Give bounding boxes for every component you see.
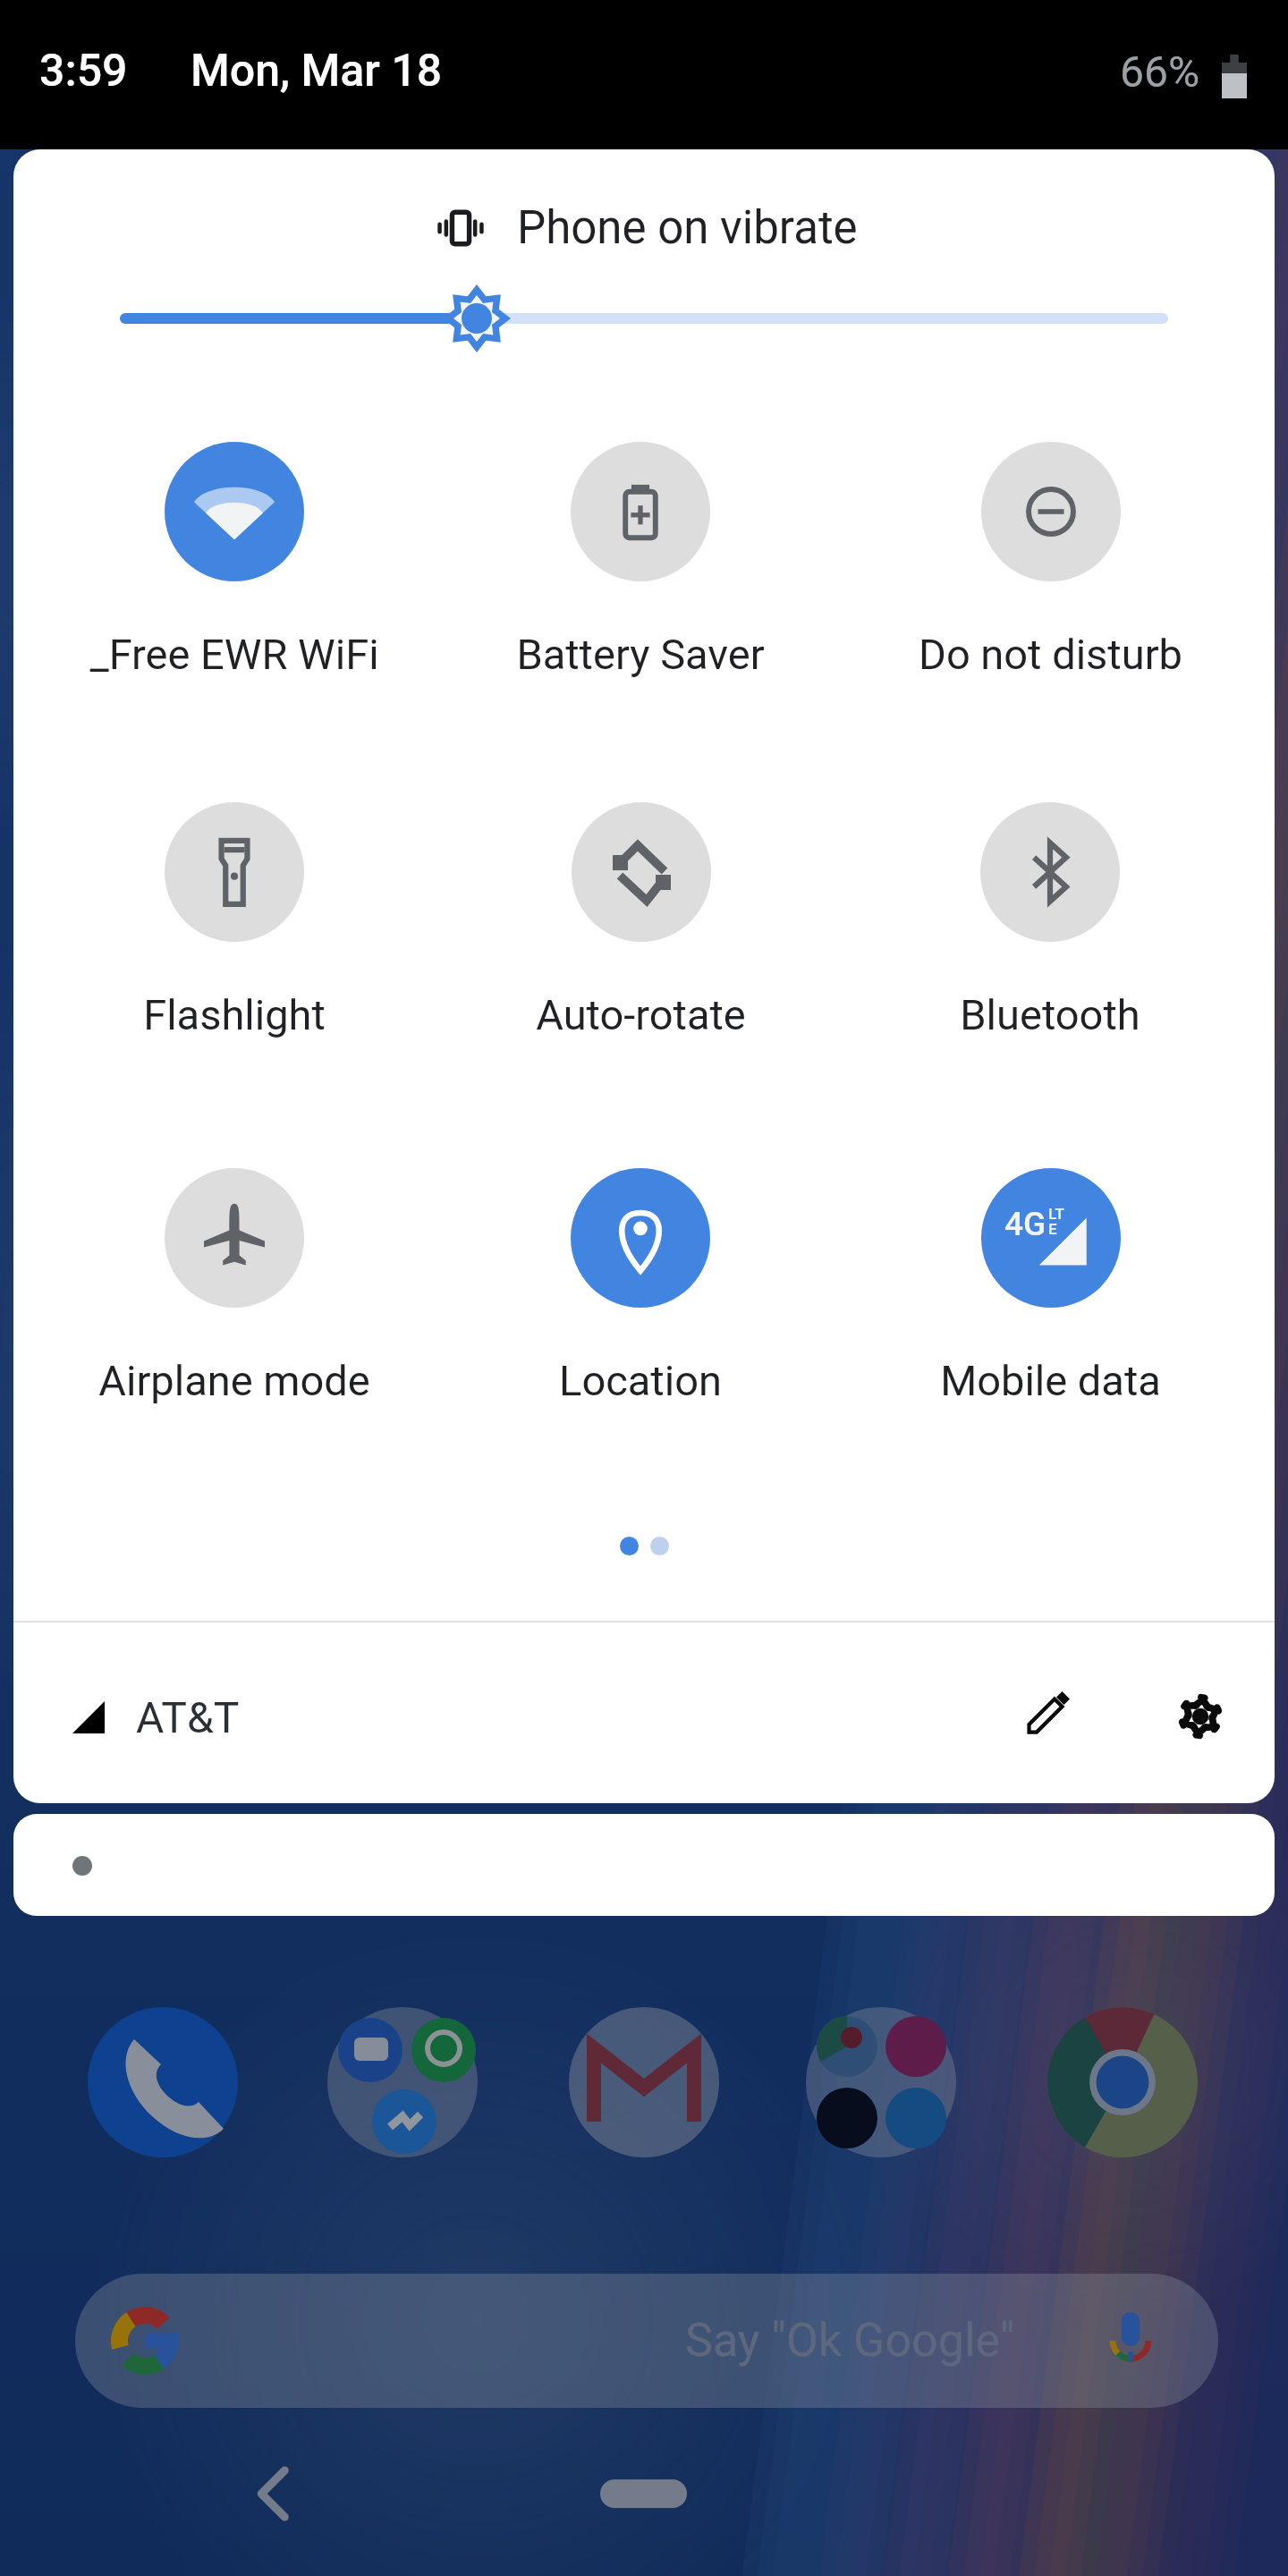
- staticText: Flashlight: [143, 990, 326, 1039]
- button[interactable]: Auto-rotate: [439, 779, 842, 1047]
- staticText: _Free EWR WiFi: [89, 630, 379, 679]
- staticText: Airplane mode: [98, 1356, 370, 1405]
- button[interactable]: Settings: [1160, 1676, 1241, 1757]
- staticText: Location: [559, 1356, 722, 1405]
- staticText: Say "Ok Google": [685, 2313, 1015, 2368]
- staticText: Auto-rotate: [536, 990, 746, 1039]
- button[interactable]: Do not disturb: [849, 419, 1251, 687]
- button[interactable]: _Free EWR WiFi: [33, 419, 436, 687]
- button[interactable]: Airplane mode: [33, 1145, 436, 1413]
- staticText: Mon, Mar 18: [191, 45, 443, 97]
- button[interactable]: 4G: [849, 1145, 1251, 1413]
- button[interactable]: Bluetooth: [849, 779, 1251, 1047]
- staticText: Mobile data: [940, 1356, 1161, 1405]
- button[interactable]: Battery Saver: [439, 419, 842, 687]
- staticText: E: [1048, 1220, 1057, 1238]
- staticText: Do not disturb: [919, 630, 1182, 679]
- button[interactable]: Location: [439, 1145, 842, 1413]
- staticText: 66%: [1120, 47, 1200, 97]
- staticText: Battery Saver: [516, 630, 765, 679]
- button[interactable]: [13, 1814, 1275, 1916]
- staticText: 3:59: [39, 45, 128, 97]
- staticText: Bluetooth: [960, 990, 1140, 1039]
- button[interactable]: Edit tiles: [1009, 1672, 1089, 1752]
- button[interactable]: Flashlight: [33, 779, 436, 1047]
- staticText: 4G: [1004, 1205, 1046, 1243]
- staticText: AT&T: [136, 1692, 240, 1742]
- staticText: LT: [1048, 1205, 1064, 1223]
- button[interactable]: Brightness: [13, 278, 1275, 359]
- staticText: Phone on vibrate: [517, 201, 858, 255]
